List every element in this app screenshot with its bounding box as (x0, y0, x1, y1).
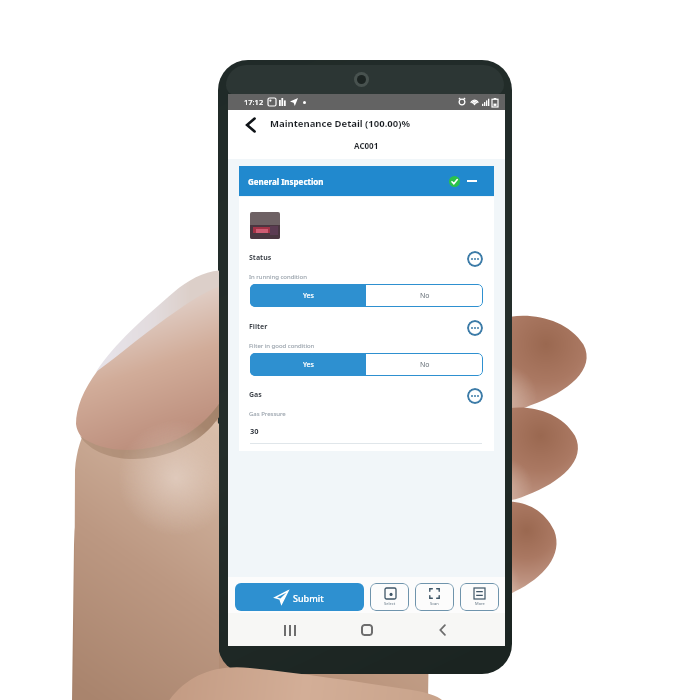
button[interactable]: Submit (235, 583, 364, 611)
button[interactable]: No (366, 284, 483, 307)
staticText: Maintenance Detail (100.00)% (270, 117, 410, 130)
staticText: In running condition (249, 273, 307, 281)
button[interactable]: Back (428, 615, 458, 645)
staticText: 30 (250, 426, 259, 436)
button[interactable]: More options (467, 251, 483, 267)
staticText: More (475, 601, 485, 606)
button[interactable]: Select (370, 583, 409, 611)
button[interactable]: Yes (250, 284, 366, 307)
staticText: Gas (249, 390, 262, 400)
staticText: Gas Pressure (249, 410, 286, 418)
staticText: No (420, 291, 430, 301)
staticText: AC001 (354, 140, 379, 151)
button[interactable]: More options (467, 320, 483, 336)
staticText: General Inspection (248, 176, 324, 187)
button[interactable]: Scan (415, 583, 454, 611)
staticText: Yes (303, 360, 314, 370)
button[interactable]: No (366, 353, 483, 376)
button[interactable]: Back (238, 112, 263, 137)
staticText: Submit (293, 592, 324, 604)
staticText: No (420, 360, 430, 370)
staticText: 17:12 (244, 97, 264, 107)
staticText: Filter (249, 322, 268, 332)
button[interactable]: More (460, 583, 499, 611)
staticText: Yes (303, 291, 314, 301)
staticText: Status (249, 253, 272, 263)
button[interactable]: More options (467, 388, 483, 404)
button[interactable]: General Inspection (239, 166, 494, 196)
button[interactable]: Recents (275, 615, 305, 645)
staticText: Select (384, 601, 396, 606)
staticText: Scan (430, 601, 439, 606)
staticText: Filter in good condition (249, 342, 315, 350)
button[interactable]: Home (352, 615, 382, 645)
button[interactable]: Yes (250, 353, 366, 376)
